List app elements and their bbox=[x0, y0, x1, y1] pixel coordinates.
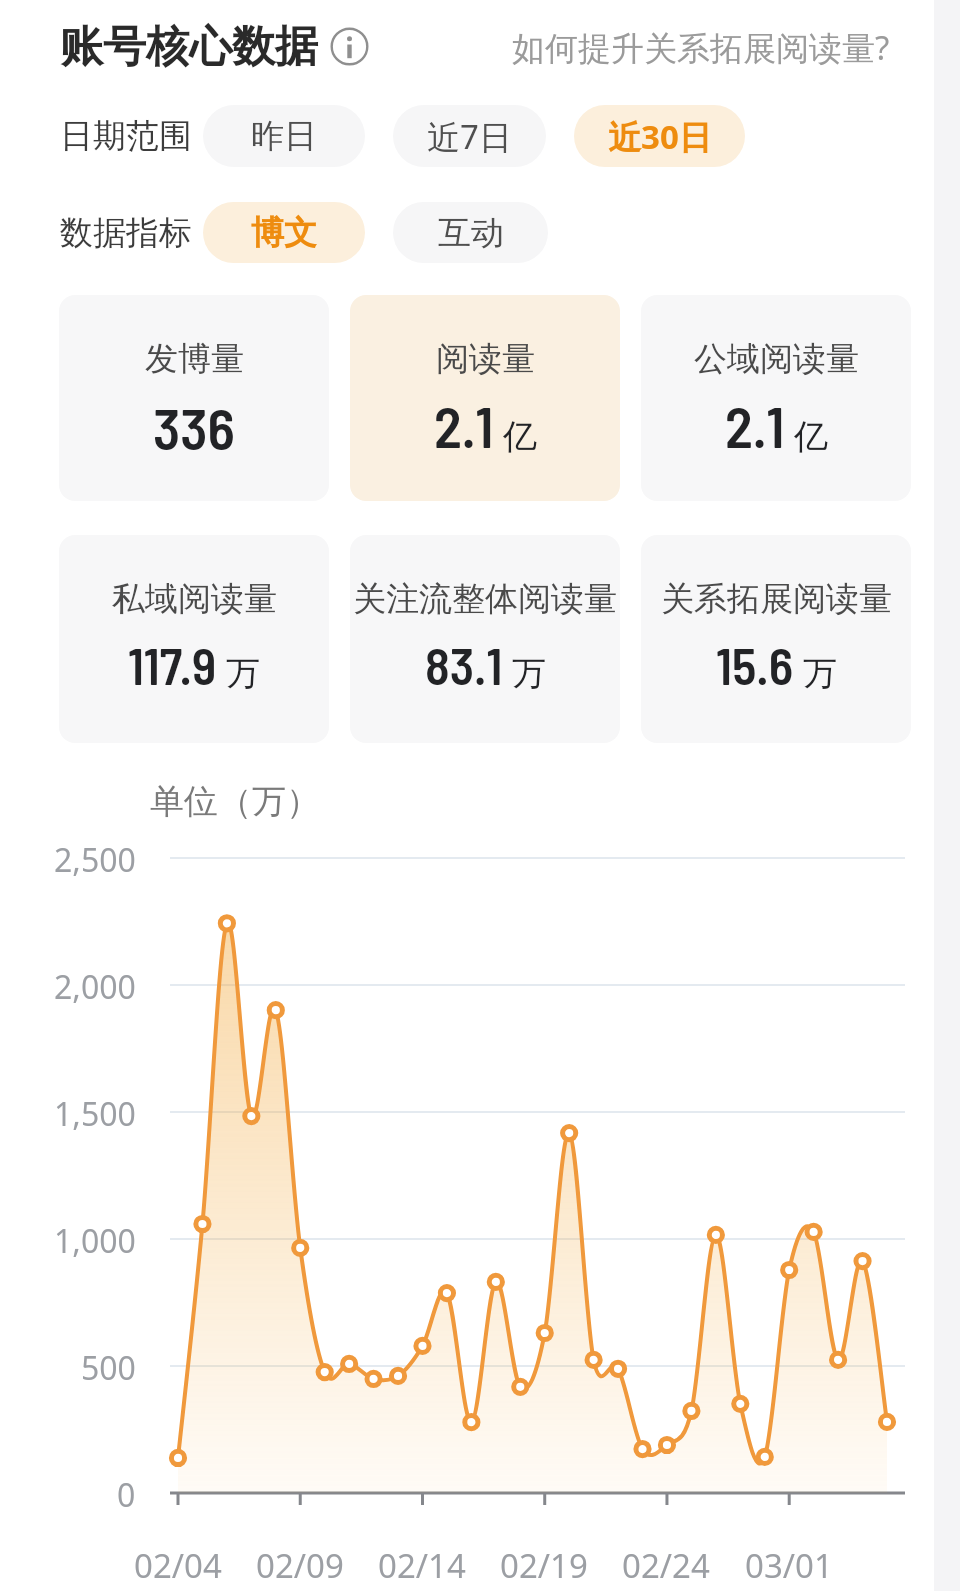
button[interactable]: 阅读量 bbox=[350, 295, 620, 501]
staticText: 发博量 bbox=[145, 338, 244, 380]
button[interactable] bbox=[330, 27, 370, 67]
button[interactable]: 博文 bbox=[203, 202, 365, 263]
staticText: 关系拓展阅读量 bbox=[661, 578, 892, 620]
staticText: 02/04 bbox=[134, 1543, 222, 1583]
staticText: 亿 bbox=[503, 415, 537, 458]
staticText: 500 bbox=[81, 1346, 136, 1386]
staticText: 2.1 bbox=[725, 391, 785, 453]
staticText: 0 bbox=[117, 1473, 136, 1513]
staticText: 关注流整体阅读量 bbox=[353, 578, 617, 620]
staticText: 账号核心数据 bbox=[60, 20, 318, 74]
button[interactable]: 关注流整体阅读量 bbox=[350, 535, 620, 743]
staticText: 02/19 bbox=[500, 1543, 588, 1583]
staticText: 单位（万） bbox=[150, 780, 320, 820]
staticText: 83.1 bbox=[425, 634, 503, 695]
staticText: 2,500 bbox=[54, 838, 136, 878]
staticText: 02/14 bbox=[378, 1543, 466, 1583]
staticText: 阅读量 bbox=[436, 338, 535, 380]
staticText: 近30日 bbox=[608, 114, 712, 159]
button[interactable]: 私域阅读量 bbox=[59, 535, 329, 743]
staticText: 117.9 bbox=[128, 634, 217, 695]
staticText: 03/01 bbox=[745, 1543, 833, 1583]
staticText: 数据指标 bbox=[60, 212, 192, 254]
staticText: 昨日 bbox=[251, 115, 317, 157]
staticText: 近7日 bbox=[427, 114, 512, 159]
button[interactable]: 关系拓展阅读量 bbox=[641, 535, 911, 743]
button[interactable]: 如何提升关系拓展阅读量? bbox=[480, 16, 890, 78]
staticText: 万 bbox=[803, 652, 837, 695]
staticText: 02/24 bbox=[622, 1543, 710, 1583]
staticText: 博文 bbox=[251, 212, 317, 254]
staticText: 互动 bbox=[438, 212, 504, 254]
staticText: 如何提升关系拓展阅读量? bbox=[512, 25, 890, 70]
staticText: 私域阅读量 bbox=[112, 578, 277, 620]
button[interactable]: 昨日 bbox=[203, 105, 365, 167]
staticText: 2,000 bbox=[54, 965, 136, 1005]
staticText: 1,500 bbox=[54, 1092, 136, 1132]
staticText: 万 bbox=[512, 652, 546, 695]
button[interactable]: 近7日 bbox=[393, 105, 546, 167]
staticText: 万 bbox=[226, 652, 260, 695]
staticText: 2.1 bbox=[434, 391, 494, 453]
staticText: 公域阅读量 bbox=[694, 338, 859, 380]
staticText: 1,000 bbox=[54, 1219, 136, 1259]
staticText: 亿 bbox=[794, 415, 828, 458]
button[interactable]: 公域阅读量 bbox=[641, 295, 911, 501]
button[interactable]: 互动 bbox=[393, 202, 548, 263]
button[interactable]: 发博量 bbox=[59, 295, 329, 501]
button[interactable]: 近30日 bbox=[574, 105, 745, 167]
staticText: 15.6 bbox=[716, 634, 794, 695]
staticText: 日期范围 bbox=[60, 115, 192, 157]
staticText: 336 bbox=[153, 393, 235, 455]
staticText: 02/09 bbox=[256, 1543, 344, 1583]
